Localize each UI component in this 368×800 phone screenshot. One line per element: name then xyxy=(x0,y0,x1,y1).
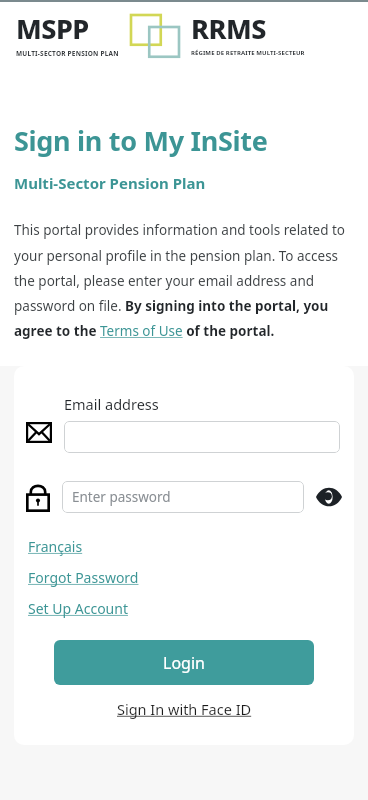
staticText: Login xyxy=(163,652,205,674)
button[interactable]: Enter password xyxy=(62,481,304,513)
button[interactable]: Login xyxy=(54,640,314,685)
staticText: RÉGIME DE RETRAITE MULTI-SECTEUR xyxy=(191,49,305,57)
staticText: RRMS xyxy=(191,10,266,47)
button[interactable]: Set Up Account xyxy=(28,599,128,618)
staticText: Forgot Password xyxy=(28,568,139,587)
button[interactable]: Show password xyxy=(314,482,344,512)
button[interactable]: Sign In with Face ID xyxy=(14,699,354,719)
staticText: MSPP xyxy=(16,10,89,47)
staticText: Enter password xyxy=(72,488,171,506)
staticText: MULTI-SECTOR PENSION PLAN xyxy=(16,49,119,58)
staticText: Set Up Account xyxy=(28,599,128,618)
staticText: Sign In with Face ID xyxy=(117,699,252,719)
staticText: Multi-Sector Pension Plan xyxy=(14,173,206,193)
staticText: Français xyxy=(28,537,83,556)
staticText: Sign in to My InSite xyxy=(14,122,268,159)
staticText: Email address xyxy=(64,394,159,414)
button[interactable] xyxy=(64,421,340,453)
staticText: This portal provides information and too… xyxy=(14,221,354,340)
button[interactable]: Forgot Password xyxy=(28,568,139,587)
button[interactable]: Français xyxy=(28,537,83,556)
